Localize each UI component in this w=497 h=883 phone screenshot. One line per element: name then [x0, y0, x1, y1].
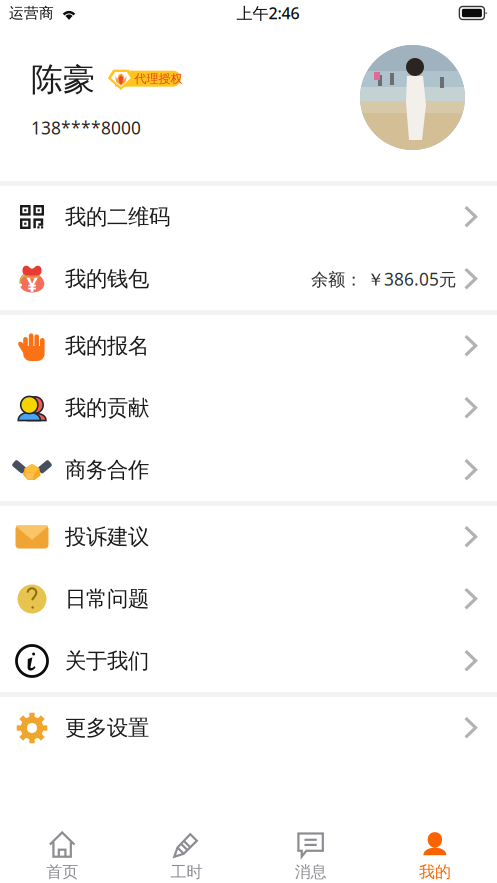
- button[interactable]: 商务合作: [0, 439, 497, 501]
- button[interactable]: 消息: [248, 817, 373, 883]
- staticText: 余额： ￥386.05元: [311, 267, 456, 290]
- button[interactable]: 更多设置: [0, 697, 497, 759]
- staticText: 我的报名: [65, 333, 149, 359]
- staticText: 138****8000: [31, 116, 141, 139]
- button[interactable]: 投诉建议: [0, 506, 497, 568]
- button[interactable]: 关于我们: [0, 630, 497, 692]
- button[interactable]: 日常问题: [0, 568, 497, 630]
- staticText: ¥: [26, 271, 37, 297]
- staticText: 消息: [295, 862, 327, 882]
- staticText: 我的: [419, 862, 451, 882]
- staticText: 上午2:46: [236, 2, 299, 24]
- button[interactable]: 我的报名: [0, 315, 497, 377]
- staticText: 日常问题: [65, 586, 149, 612]
- staticText: 首页: [46, 862, 78, 882]
- button[interactable]: ¥: [0, 248, 497, 310]
- staticText: 投诉建议: [65, 524, 149, 550]
- staticText: 代理授权: [134, 71, 182, 86]
- button[interactable]: 我的贡献: [0, 377, 497, 439]
- staticText: 陈豪: [31, 60, 95, 99]
- staticText: 我的二维码: [65, 204, 170, 230]
- staticText: 运营商: [9, 4, 54, 22]
- staticText: 工时: [170, 862, 202, 882]
- staticText: 我的钱包: [65, 266, 149, 292]
- staticText: 关于我们: [65, 648, 149, 674]
- button[interactable]: 首页: [0, 817, 124, 883]
- staticText: 更多设置: [65, 715, 149, 741]
- button[interactable]: 我的二维码: [0, 186, 497, 248]
- button[interactable]: 工时: [124, 817, 248, 883]
- button[interactable]: 我的: [373, 817, 497, 883]
- staticText: 我的贡献: [65, 395, 149, 421]
- staticText: 商务合作: [65, 457, 149, 483]
